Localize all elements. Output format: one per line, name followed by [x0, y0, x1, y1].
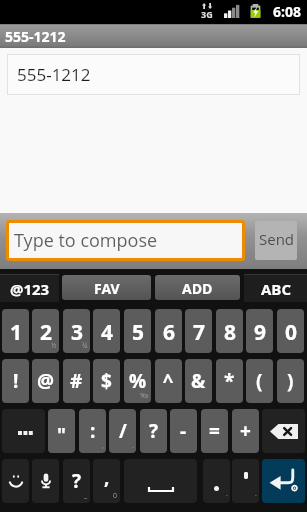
staticText: @123	[10, 279, 50, 299]
button[interactable]: Voice input	[32, 459, 59, 503]
staticText: 0	[285, 318, 297, 347]
staticText: &	[191, 368, 206, 394]
staticText: (	[256, 368, 263, 394]
staticText: 3	[71, 318, 83, 347]
button[interactable]: FAV	[62, 275, 151, 300]
button[interactable]: Period	[203, 459, 230, 503]
staticText: 2	[40, 318, 52, 347]
button[interactable]: Emoji	[2, 459, 29, 503]
button[interactable]: ?	[140, 409, 167, 453]
button[interactable]: 7	[185, 309, 212, 353]
staticText: 6:08	[273, 2, 301, 21]
button[interactable]: :	[79, 409, 106, 453]
staticText: .	[132, 441, 134, 451]
staticText: *	[224, 368, 235, 394]
button[interactable]: Type to compose	[9, 223, 242, 258]
staticText: +	[240, 418, 251, 444]
staticText: ,	[104, 464, 110, 490]
staticText: 4	[101, 318, 113, 347]
button[interactable]: Send	[255, 221, 297, 260]
button[interactable]: Space	[124, 459, 197, 503]
button[interactable]: Enter	[262, 459, 305, 503]
staticText: Type to compose	[14, 228, 158, 253]
staticText: ·	[255, 491, 257, 501]
staticText: 3G	[201, 8, 213, 20]
staticText: ½	[51, 341, 57, 351]
button[interactable]: #	[63, 359, 90, 403]
staticText: 6	[163, 318, 175, 347]
button[interactable]: @123	[0, 274, 59, 302]
button[interactable]: ABC	[244, 274, 307, 302]
staticText: !	[13, 368, 19, 394]
staticText: 8	[224, 318, 236, 347]
button[interactable]: "	[48, 409, 75, 453]
staticText: :	[90, 418, 96, 444]
staticText: 1	[10, 318, 22, 347]
button[interactable]: (	[246, 359, 273, 403]
staticText: =	[209, 418, 220, 444]
button[interactable]: &	[185, 359, 212, 403]
staticText: "	[57, 422, 66, 448]
button[interactable]: =	[201, 409, 228, 453]
staticText: ABC	[261, 279, 291, 299]
staticText: #	[70, 368, 83, 394]
staticText: 9	[254, 318, 266, 347]
button[interactable]: *	[216, 359, 243, 403]
staticText: ^	[163, 368, 174, 394]
button[interactable]: ADD	[155, 275, 240, 300]
button[interactable]: 1	[2, 309, 29, 353]
button[interactable]: 555-1212	[8, 55, 299, 94]
button[interactable]: !	[2, 359, 29, 403]
staticText: 0	[113, 491, 118, 501]
button[interactable]: -	[170, 409, 197, 453]
button[interactable]: Apostrophe	[232, 459, 259, 503]
staticText: ‰	[140, 391, 149, 401]
button[interactable]: ,	[93, 459, 120, 503]
staticText: ,	[102, 441, 104, 451]
button[interactable]: More symbols	[2, 409, 45, 453]
staticText: 555-1212	[5, 27, 66, 46]
staticText: 555-1212	[17, 63, 91, 86]
button[interactable]: /	[109, 409, 136, 453]
button[interactable]: 4	[93, 309, 120, 353]
staticText: %	[129, 368, 147, 394]
staticText: ·	[226, 491, 228, 501]
button[interactable]: ^	[155, 359, 182, 403]
staticText: FAV	[94, 279, 120, 298]
button[interactable]: Backspace	[262, 409, 305, 453]
button[interactable]: 3	[63, 309, 90, 353]
button[interactable]: 0	[277, 309, 304, 353]
staticText: ¾	[82, 341, 88, 351]
button[interactable]: @	[32, 359, 59, 403]
staticText: ADD	[182, 279, 213, 298]
staticText: $	[101, 368, 112, 394]
staticText: @	[37, 368, 55, 394]
staticText: ?	[149, 418, 159, 444]
button[interactable]: ?	[63, 459, 90, 503]
button[interactable]: 2	[32, 309, 59, 353]
button[interactable]: 8	[216, 309, 243, 353]
button[interactable]: $	[93, 359, 120, 403]
staticText: Send	[259, 229, 295, 249]
staticText: /	[119, 418, 127, 444]
staticText: 7	[193, 318, 205, 347]
button[interactable]: )	[277, 359, 304, 403]
button[interactable]: 6	[155, 309, 182, 353]
button[interactable]: 5	[124, 309, 151, 353]
staticText: -	[180, 418, 187, 444]
staticText: 5	[132, 318, 144, 347]
staticText: _	[84, 491, 88, 501]
staticText: )	[287, 368, 294, 394]
button[interactable]: 9	[246, 309, 273, 353]
staticText: ?	[72, 468, 82, 494]
button[interactable]: %	[124, 359, 151, 403]
button[interactable]: +	[232, 409, 259, 453]
